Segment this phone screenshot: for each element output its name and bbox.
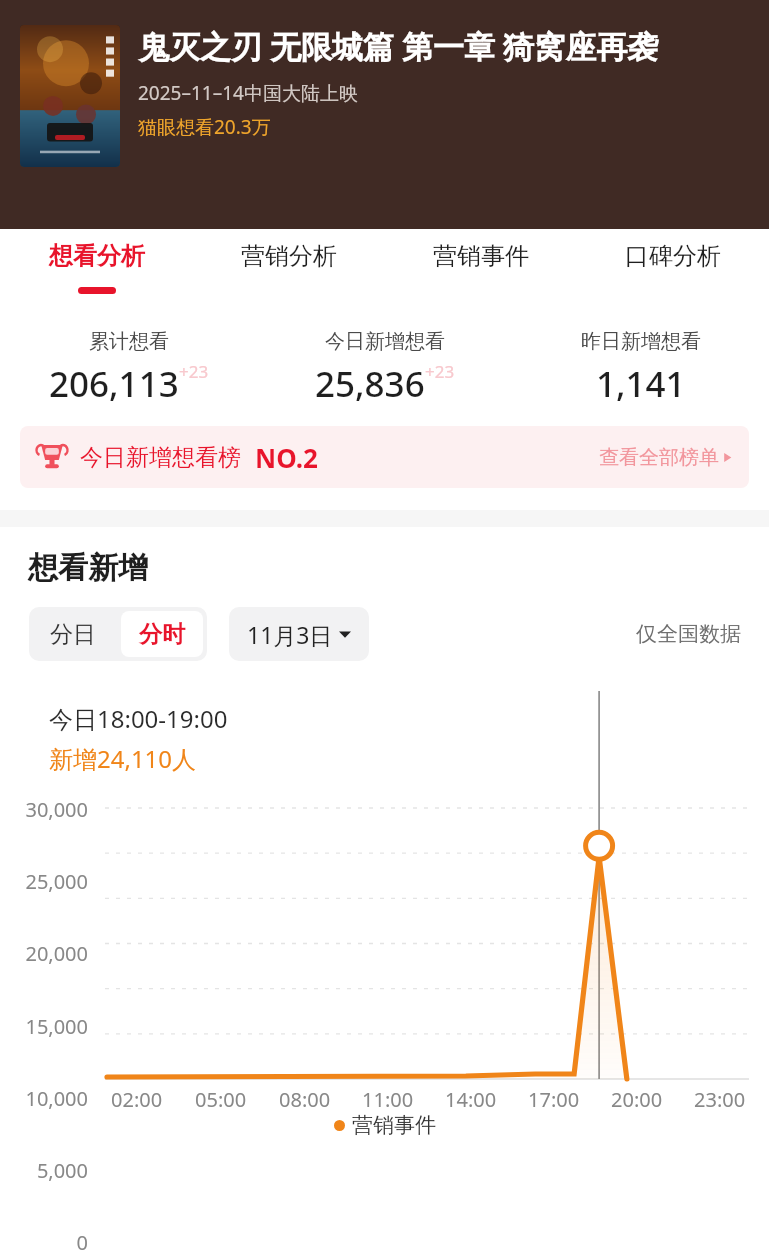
staticText: NO.2 — [255, 440, 318, 475]
staticText: 20,000 — [0, 940, 88, 967]
staticText: 今日新增想看榜 — [80, 443, 241, 472]
staticText: 10,000 — [0, 1085, 88, 1112]
staticText: 15,000 — [0, 1013, 88, 1040]
staticText: 02:00 — [111, 1086, 163, 1113]
staticText: 今日18:00-19:00 — [49, 702, 228, 735]
other: Trophy — [34, 439, 70, 475]
button[interactable]: Trophy — [20, 426, 749, 488]
staticText: 营销事件 — [352, 1112, 436, 1138]
button[interactable]: 营销事件 — [385, 241, 577, 307]
button[interactable]: 今日新增想看 — [257, 329, 513, 408]
staticText: 营销事件 — [433, 241, 529, 271]
button[interactable]: Movie poster — [20, 25, 120, 167]
button[interactable]: 分时 — [121, 611, 203, 657]
staticText: 查看全部榜单 — [599, 445, 719, 470]
staticText: 累计想看 — [89, 329, 169, 354]
staticText: 昨日新增想看 — [581, 329, 701, 354]
staticText: 05:00 — [195, 1086, 247, 1113]
staticText: 0 — [0, 1229, 88, 1256]
staticText: +23 — [425, 360, 455, 383]
staticText: 2025–11–14中国大陆上映 — [138, 80, 358, 106]
staticText: 想看新增 — [28, 549, 148, 587]
staticText: 仅全国数据 — [636, 621, 741, 647]
staticText: +23 — [179, 360, 209, 383]
staticText: 23:00 — [694, 1086, 746, 1113]
staticText: 08:00 — [279, 1086, 331, 1113]
staticText: 想看分析 — [49, 241, 145, 271]
staticText: 口碑分析 — [625, 241, 721, 271]
staticText: 206,113 — [49, 360, 179, 408]
staticText: 营销分析 — [241, 241, 337, 271]
staticText: 鬼灭之刃 无限城篇 第一章 猗窝座再袭 — [138, 25, 659, 67]
staticText: 猫眼想看20.3万 — [138, 114, 271, 140]
staticText: 11:00 — [362, 1086, 414, 1113]
staticText: 新增24,110人 — [49, 742, 197, 775]
staticText: 20:00 — [611, 1086, 663, 1113]
staticText: 17:00 — [528, 1086, 580, 1113]
staticText: 14:00 — [445, 1086, 497, 1113]
staticText: 30,000 — [0, 796, 88, 823]
button[interactable]: 11月3日 — [229, 607, 369, 661]
button[interactable]: 分日 — [29, 607, 117, 661]
staticText: 分日 — [50, 620, 96, 649]
staticText: 今日新增想看 — [325, 329, 445, 354]
button[interactable]: 营销分析 — [193, 241, 385, 307]
staticText: 5,000 — [0, 1157, 88, 1184]
staticText: 25,836 — [315, 360, 425, 408]
staticText: 25,000 — [0, 868, 88, 895]
staticText: 1,141 — [596, 360, 686, 408]
staticText: 分时 — [139, 620, 185, 649]
button[interactable]: 累计想看 — [0, 329, 257, 408]
staticText: 11月3日 — [247, 619, 333, 650]
button[interactable]: 昨日新增想看 — [513, 329, 769, 408]
button[interactable]: 想看分析 — [0, 241, 193, 307]
button[interactable]: 口碑分析 — [577, 241, 769, 307]
